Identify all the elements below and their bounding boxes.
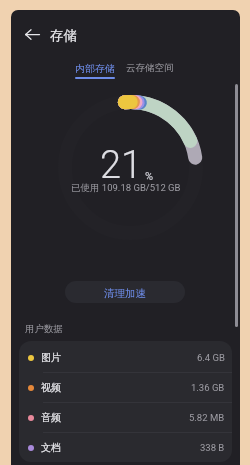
button[interactable]: 视频	[19, 372, 232, 402]
staticText: 6.4 GB	[197, 352, 225, 363]
staticText: 1.36 GB	[191, 382, 225, 393]
staticText: 音频	[41, 411, 61, 424]
staticText: 清理加速	[104, 287, 146, 300]
staticText: 文档	[41, 441, 61, 454]
button[interactable]: 内部存储	[75, 62, 115, 79]
staticText: 内部存储	[75, 62, 115, 75]
staticText: 21	[100, 143, 143, 188]
staticText: 338 B	[200, 442, 225, 453]
staticText: 存储	[50, 27, 77, 44]
staticText: 用户数据	[25, 323, 63, 335]
button[interactable]: 清理加速	[65, 281, 185, 303]
button[interactable]: Back	[17, 19, 47, 49]
staticText: %	[145, 170, 154, 183]
staticText: 已使用 109.18 GB/512 GB	[71, 182, 181, 194]
button[interactable]: 音频	[19, 402, 232, 432]
staticText: 图片	[41, 351, 61, 364]
staticText: 视频	[41, 381, 61, 394]
button[interactable]: 云存储空间	[126, 62, 174, 74]
button[interactable]: 图片	[19, 343, 232, 372]
button[interactable]: 文档	[19, 432, 232, 462]
staticText: 5.82 MB	[189, 412, 225, 423]
staticText: 云存储空间	[126, 62, 174, 74]
